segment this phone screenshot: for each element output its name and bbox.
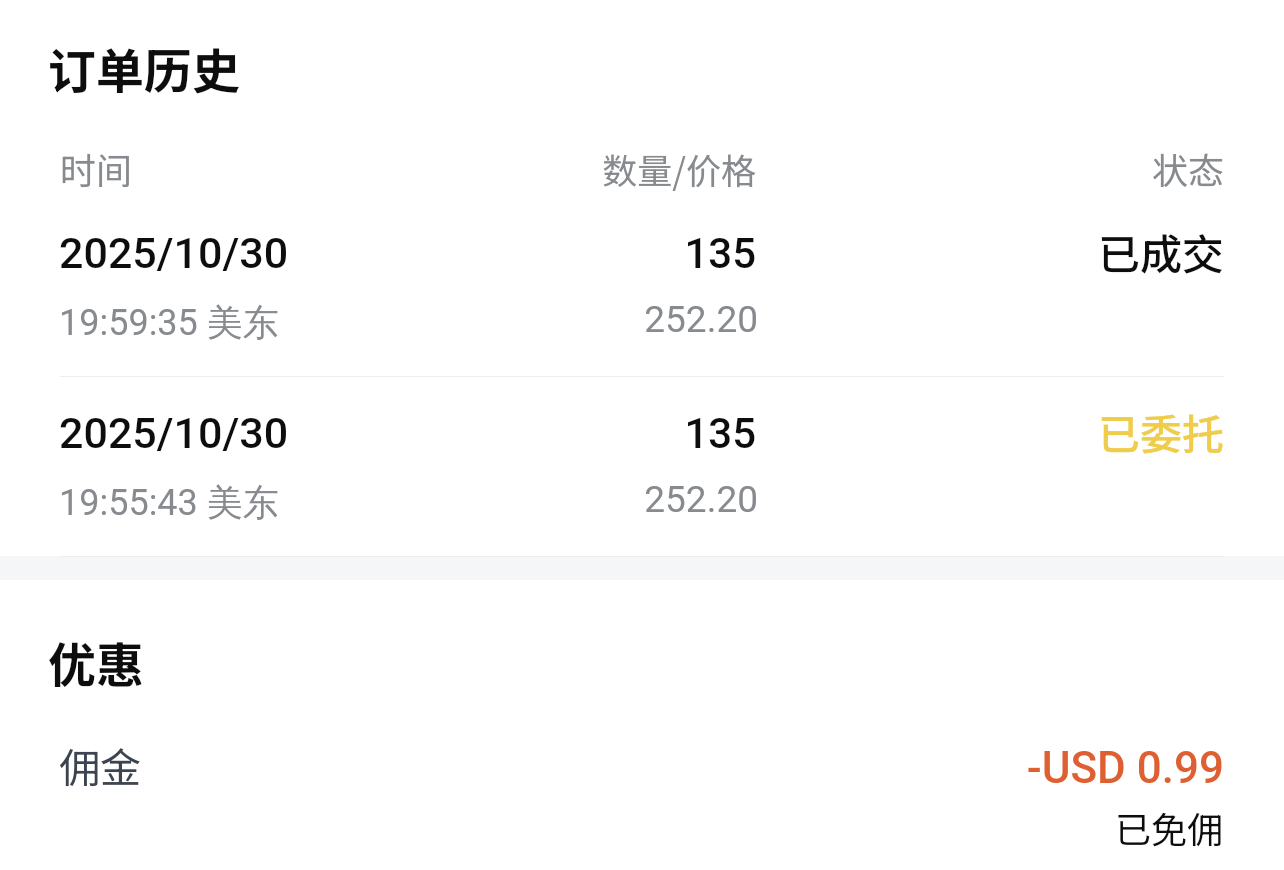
staticText: 状态 [900,142,1224,194]
button[interactable]: 2025/10/30 [0,385,1284,555]
staticText: 数量/价格 [400,143,756,194]
button[interactable]: 2025/10/30 [0,205,1284,375]
staticText: 已免佣 [800,801,1223,853]
staticText: 佣金 [59,735,459,794]
staticText: -USD 0.99 [800,742,1224,794]
staticText: 135 [400,229,756,278]
staticText: 2025/10/30 [59,228,459,278]
staticText: 已成交 [900,221,1224,282]
staticText: 19:55:43 美东 [59,480,459,525]
staticText: 时间 [60,142,360,194]
button[interactable]: 佣金 [0,712,1284,870]
staticText: 252.20 [400,298,758,341]
staticText: 252.20 [400,478,758,521]
staticText: 2025/10/30 [59,408,459,458]
staticText: 19:59:35 美东 [59,300,459,345]
staticText: 已委托 [900,401,1224,462]
staticText: 优惠 [48,627,468,697]
staticText: 135 [400,409,756,458]
staticText: 订单历史 [48,33,468,103]
